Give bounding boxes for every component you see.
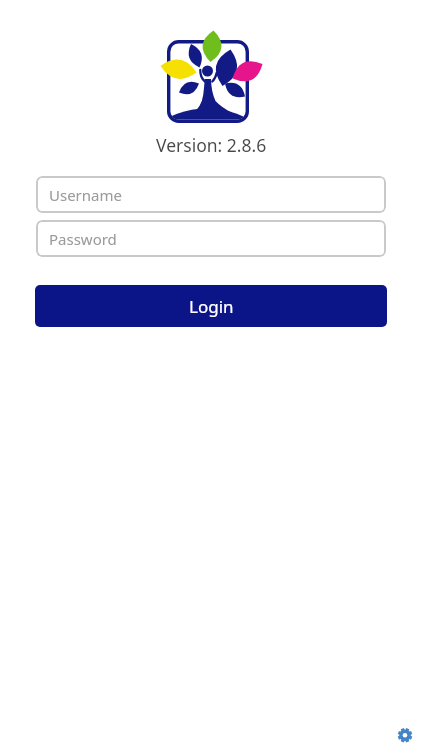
staticText: Login [189, 295, 234, 318]
button[interactable]: Password [36, 220, 386, 257]
staticText: Password [49, 229, 117, 249]
button[interactable]: Username [36, 176, 386, 213]
staticText: Username [49, 185, 122, 205]
staticText: Version: 2.8.6 [156, 133, 267, 157]
button[interactable] [396, 726, 414, 744]
button[interactable]: Login [35, 285, 387, 327]
